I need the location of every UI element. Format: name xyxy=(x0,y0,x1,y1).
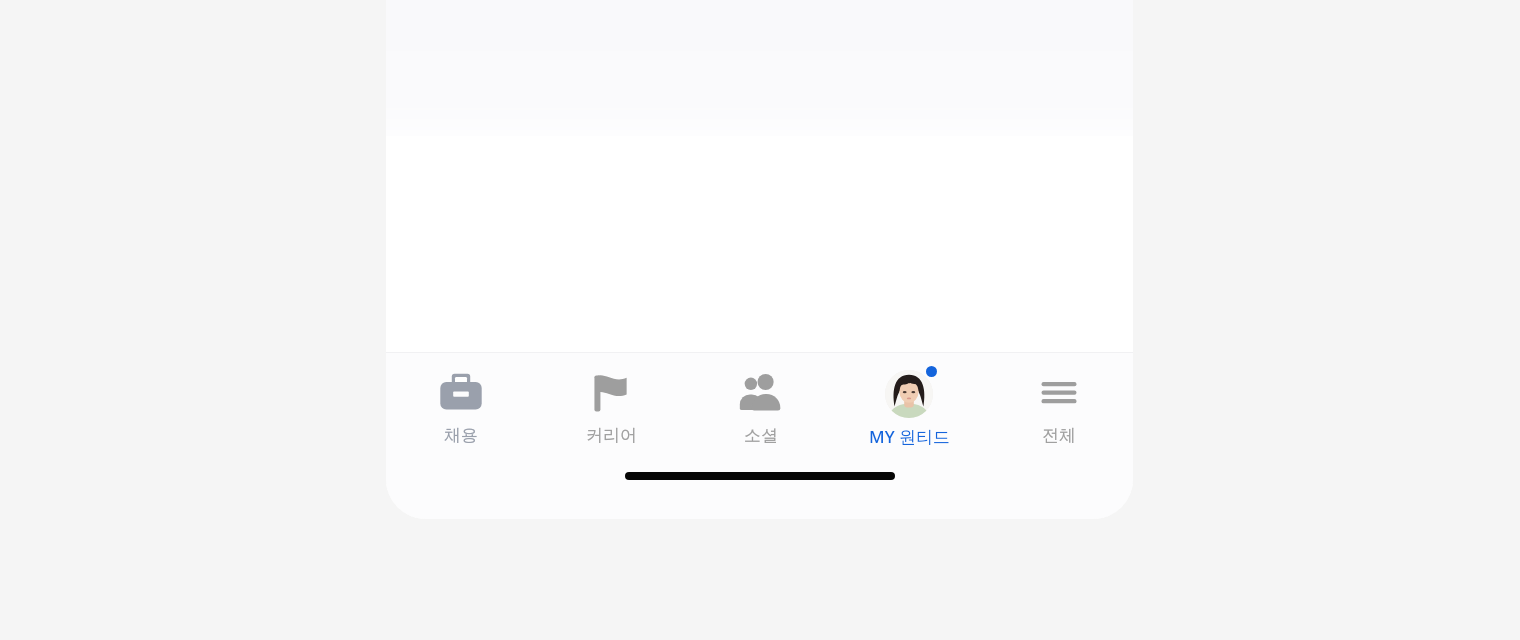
button[interactable]: 채용 xyxy=(386,353,536,466)
button[interactable]: 전체 xyxy=(984,353,1133,466)
staticText: 전체 xyxy=(1042,425,1076,446)
staticText: 소셜 xyxy=(744,425,778,446)
staticText: 커리어 xyxy=(586,425,637,446)
button[interactable]: 커리어 xyxy=(536,353,686,466)
staticText: 채용 xyxy=(444,425,478,446)
staticText: MY 원티드 xyxy=(869,425,950,448)
button[interactable]: MY 원티드 xyxy=(835,353,984,466)
button[interactable]: 소셜 xyxy=(686,353,835,466)
